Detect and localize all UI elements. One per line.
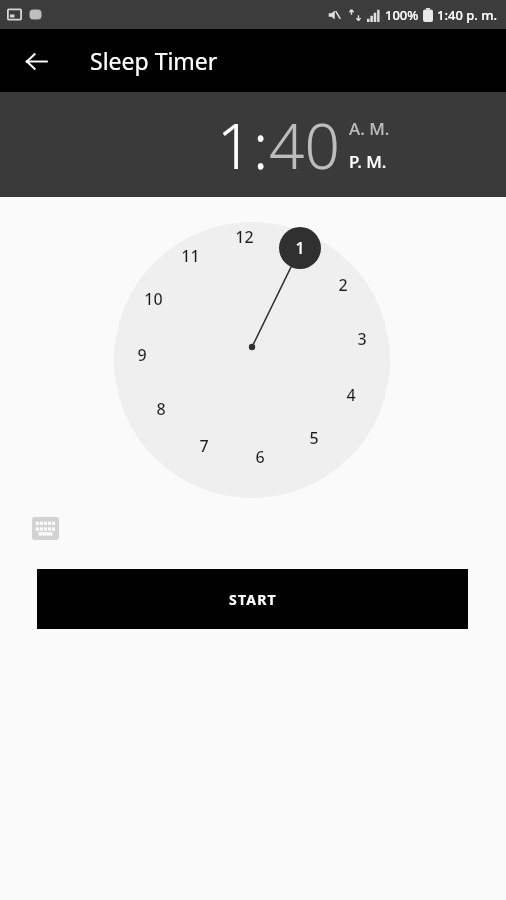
button[interactable] xyxy=(114,222,390,498)
button[interactable]: P. M. xyxy=(349,150,387,173)
staticText: 9 xyxy=(137,344,147,366)
staticText: 4 xyxy=(346,384,356,406)
staticText: 8 xyxy=(156,398,166,420)
staticText: 40 xyxy=(269,103,340,187)
staticText: 11 xyxy=(181,245,200,267)
staticText: 6 xyxy=(255,446,265,468)
button[interactable]: 12 xyxy=(223,216,265,258)
button[interactable]: Back xyxy=(12,37,60,85)
staticText: 12 xyxy=(235,226,254,248)
button[interactable]: 11 xyxy=(169,235,211,277)
button[interactable]: 2 xyxy=(322,264,364,306)
staticText: START xyxy=(229,590,277,609)
staticText: 5 xyxy=(309,427,319,449)
staticText: 7 xyxy=(199,435,209,457)
staticText: Sleep Timer xyxy=(90,45,218,76)
button[interactable]: 9 xyxy=(121,334,163,376)
button[interactable]: Switch to keyboard input xyxy=(22,505,68,551)
button[interactable]: START xyxy=(37,569,468,629)
button[interactable]: 6 xyxy=(239,436,281,478)
staticText: 3 xyxy=(357,328,367,350)
staticText: A. M. xyxy=(349,117,390,140)
staticText: P. M. xyxy=(349,150,387,173)
staticText: 1:40 p. m. xyxy=(437,6,498,24)
staticText: 2 xyxy=(338,274,348,296)
button[interactable]: 5 xyxy=(293,417,335,459)
button[interactable]: 7 xyxy=(183,425,225,467)
button[interactable]: 1 xyxy=(279,227,321,269)
button[interactable]: 40 xyxy=(269,103,340,187)
staticText: 1 xyxy=(295,237,305,259)
staticText: 1 xyxy=(217,103,253,187)
staticText: 100% xyxy=(385,6,419,24)
button[interactable]: 1 xyxy=(217,103,253,187)
button[interactable]: 4 xyxy=(330,374,372,416)
button[interactable]: A. M. xyxy=(349,117,390,140)
staticText: : xyxy=(253,103,269,187)
button[interactable]: 10 xyxy=(132,278,174,320)
button[interactable]: 3 xyxy=(341,318,383,360)
button[interactable]: 8 xyxy=(140,388,182,430)
staticText: 10 xyxy=(144,288,163,310)
